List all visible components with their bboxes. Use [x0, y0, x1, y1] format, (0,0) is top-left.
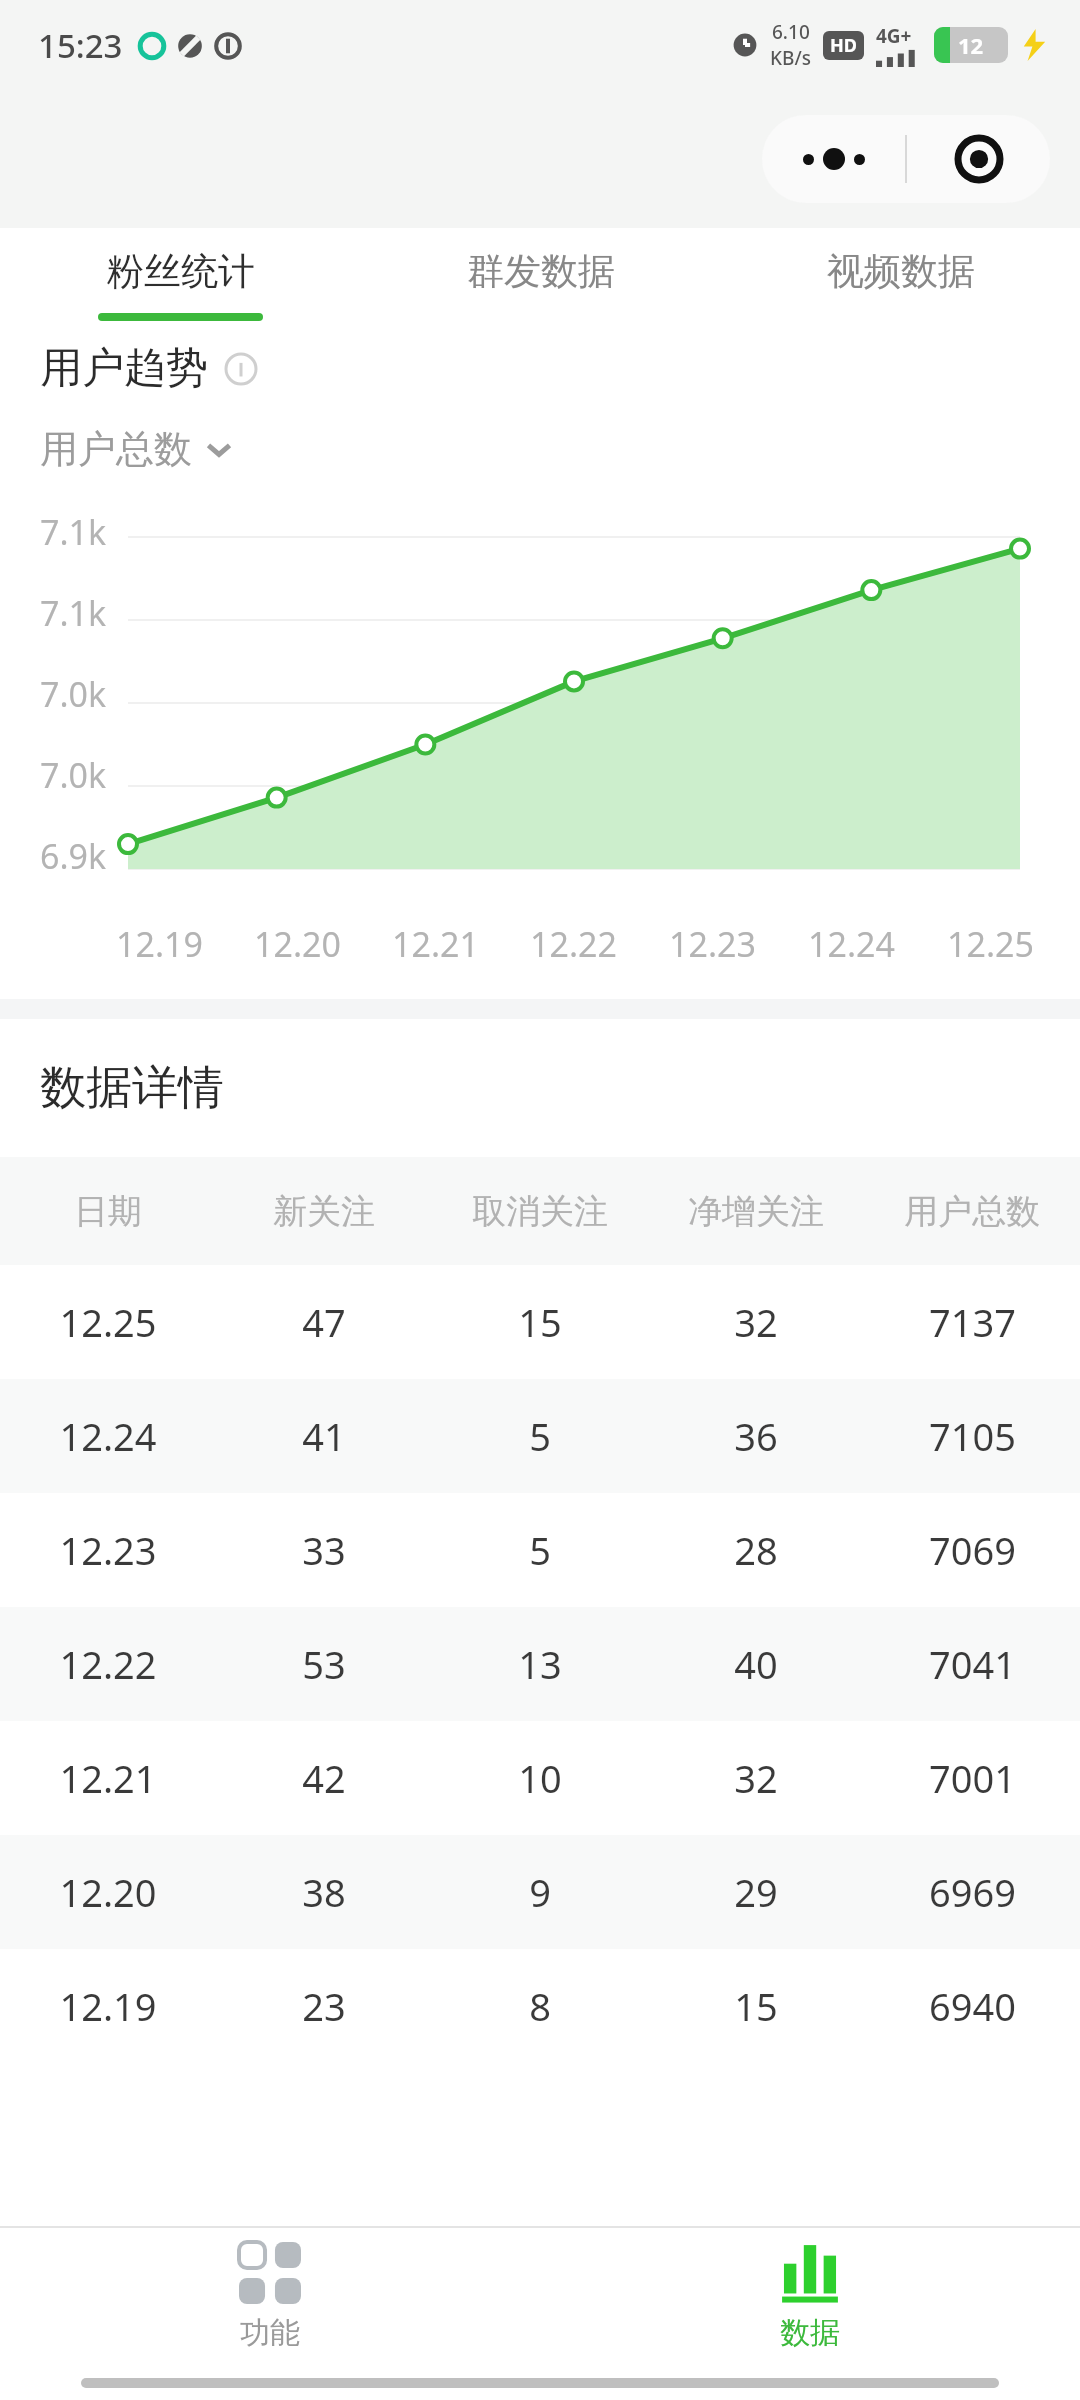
staticText: 13	[518, 1638, 562, 1690]
button[interactable]: 12.19	[0, 1949, 1080, 2063]
staticText: 用户总数	[904, 1190, 1040, 1233]
staticText: 12.19	[59, 1980, 157, 2032]
staticText: 23	[302, 1980, 346, 2032]
staticText: 12.25	[947, 921, 1034, 967]
button[interactable]: 12.22	[0, 1607, 1080, 1721]
staticText: 28	[734, 1524, 778, 1576]
button[interactable]: 12.21	[0, 1721, 1080, 1835]
staticText: 7.0k	[40, 671, 107, 717]
button[interactable]: More	[762, 115, 905, 203]
staticText: 12.19	[116, 921, 203, 967]
staticText: 41	[302, 1410, 346, 1462]
staticText: 29	[734, 1866, 778, 1918]
staticText: 12.22	[530, 921, 617, 967]
staticText: 用户总数	[40, 425, 192, 473]
staticText: 12.25	[59, 1296, 157, 1348]
staticText: 12.22	[59, 1638, 157, 1690]
staticText: 日期	[74, 1190, 142, 1233]
button[interactable]: 粉丝统计	[0, 228, 360, 340]
button[interactable]: 功能	[0, 2228, 540, 2366]
staticText: 32	[734, 1296, 778, 1348]
button[interactable]: 数据	[540, 2228, 1080, 2366]
button[interactable]: 12.23	[0, 1493, 1080, 1607]
staticText: 12.24	[808, 921, 895, 967]
button[interactable]: 12.25	[0, 1265, 1080, 1379]
staticText: 12.20	[59, 1866, 157, 1918]
staticText: 7.1k	[40, 509, 107, 555]
staticText: 12.24	[59, 1410, 157, 1462]
staticText: 数据	[780, 2314, 840, 2352]
staticText: 12.20	[254, 921, 341, 967]
staticText: 视频数据	[827, 248, 975, 295]
staticText: 12.21	[392, 921, 479, 967]
staticText: 7105	[929, 1410, 1016, 1462]
staticText: 5	[529, 1524, 551, 1576]
staticText: 7137	[929, 1296, 1016, 1348]
staticText: 15	[518, 1296, 562, 1348]
staticText: 8	[529, 1980, 551, 2032]
staticText: 9	[529, 1866, 551, 1918]
staticText: 15:23	[38, 23, 123, 68]
staticText: 32	[734, 1752, 778, 1804]
staticText: 7.1k	[40, 590, 107, 636]
staticText: 40	[734, 1638, 778, 1690]
staticText: 12	[958, 30, 984, 60]
staticText: 6940	[929, 1980, 1016, 2032]
staticText: 12.21	[59, 1752, 157, 1804]
staticText: 6.9k	[40, 833, 107, 879]
staticText: 4G+	[876, 23, 912, 49]
staticText: HD	[830, 33, 857, 58]
staticText: 7.0k	[40, 752, 107, 798]
staticText: 新关注	[273, 1190, 375, 1233]
staticText: 粉丝统计	[107, 248, 255, 295]
staticText: 38	[302, 1866, 346, 1918]
staticText: 7069	[929, 1524, 1016, 1576]
staticText: 5	[529, 1410, 551, 1462]
button[interactable]: 用户总数	[40, 425, 234, 473]
staticText: 功能	[240, 2314, 300, 2352]
staticText: 6969	[929, 1866, 1016, 1918]
staticText: 6.10	[772, 19, 810, 45]
staticText: 12.23	[669, 921, 756, 967]
staticText: 7041	[929, 1638, 1016, 1690]
button[interactable]: 视频数据	[720, 228, 1080, 340]
staticText: 36	[734, 1410, 778, 1462]
staticText: 群发数据	[467, 248, 615, 295]
staticText: 10	[518, 1752, 562, 1804]
staticText: 33	[302, 1524, 346, 1576]
staticText: KB/s	[770, 45, 811, 71]
staticText: 12.23	[59, 1524, 157, 1576]
button[interactable]: Info	[224, 352, 258, 386]
staticText: 53	[302, 1638, 346, 1690]
staticText: 47	[302, 1296, 346, 1348]
button[interactable]: 群发数据	[360, 228, 720, 340]
staticText: 取消关注	[472, 1190, 608, 1233]
button[interactable]: Close	[907, 115, 1050, 203]
staticText: 7001	[929, 1752, 1016, 1804]
staticText: 用户趋势	[40, 342, 208, 395]
staticText: 42	[302, 1752, 346, 1804]
button[interactable]: 12.24	[0, 1379, 1080, 1493]
staticText: 净增关注	[688, 1190, 824, 1233]
staticText: 15	[734, 1980, 778, 2032]
button[interactable]: 12.20	[0, 1835, 1080, 1949]
staticText: 数据详情	[40, 1059, 224, 1117]
